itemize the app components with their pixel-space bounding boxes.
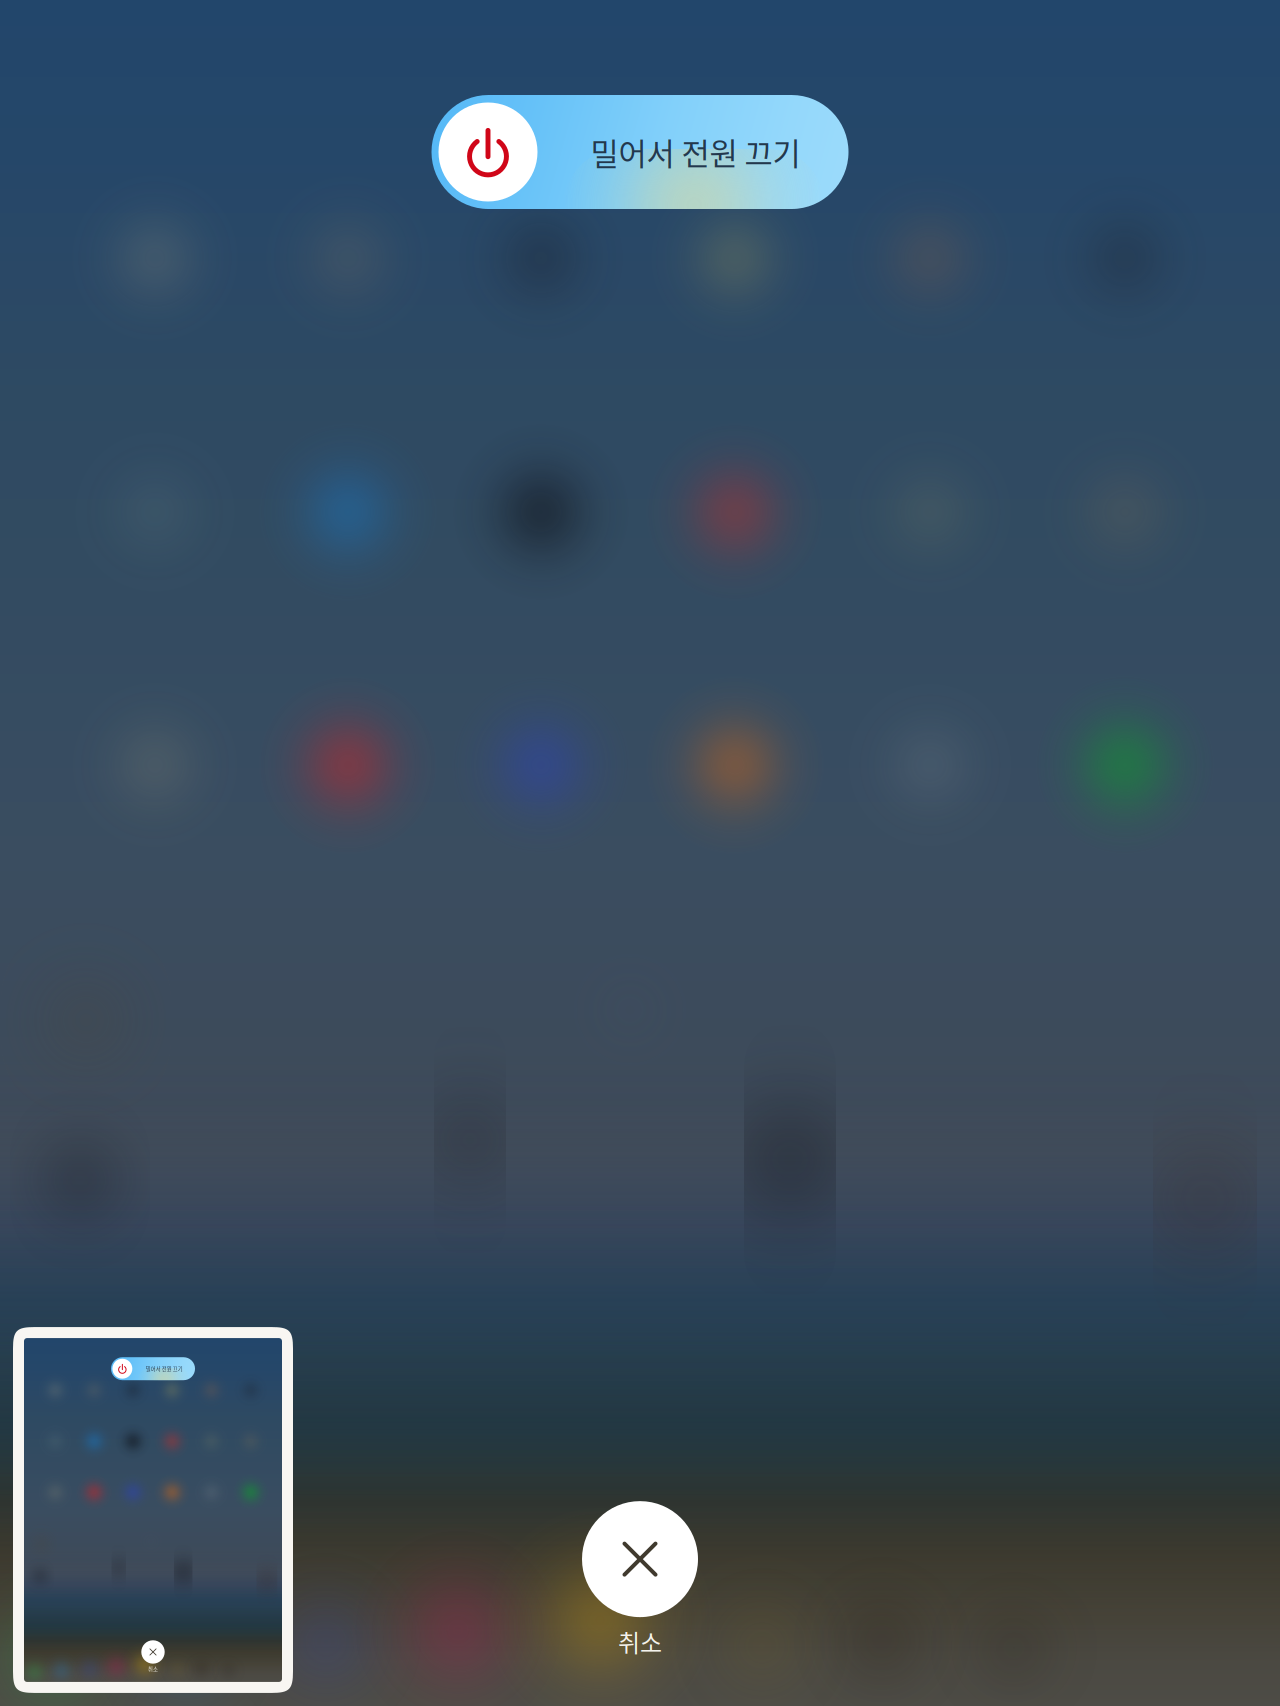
- staticText: 취소: [148, 1665, 158, 1673]
- staticText: 취소: [618, 1624, 662, 1659]
- staticText: 밀어서 전원 끄기: [146, 1365, 183, 1372]
- button[interactable]: 취소: [530, 1503, 750, 1657]
- button[interactable]: 스크린샷 미리보기: [13, 1327, 293, 1693]
- button[interactable]: 밀어서 전원 끄기: [431, 95, 848, 209]
- staticText: 밀어서 전원 끄기: [590, 130, 800, 174]
